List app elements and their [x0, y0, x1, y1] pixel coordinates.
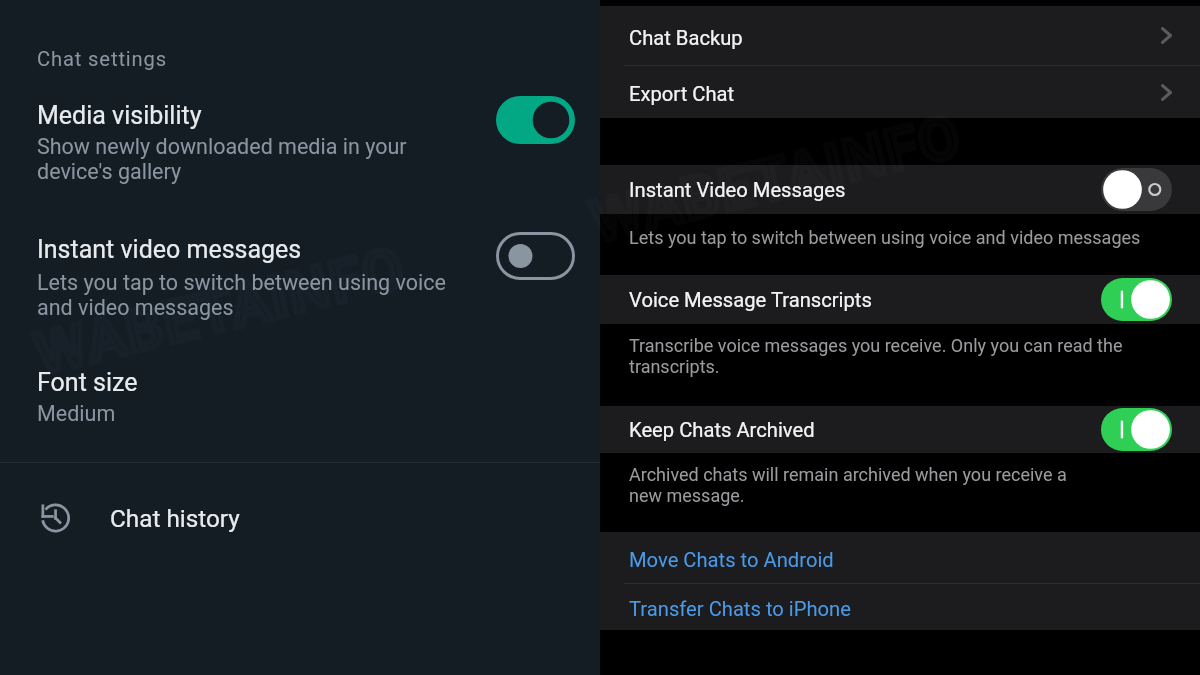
- staticText: Voice Message Transcripts: [629, 288, 872, 312]
- staticText: Instant video messages: [37, 235, 302, 264]
- button[interactable]: Switch off: [1101, 168, 1172, 211]
- staticText: Transfer Chats to iPhone: [629, 597, 851, 621]
- button[interactable]: Transfer Chats to iPhone: [600, 584, 1200, 630]
- button[interactable]: Keep Chats Archived: [600, 406, 1200, 453]
- staticText: Font size: [37, 368, 138, 397]
- staticText: Move Chats to Android: [629, 548, 834, 572]
- button[interactable]: Voice Message Transcripts: [600, 275, 1200, 324]
- button[interactable]: Chat Backup: [600, 6, 1200, 65]
- button[interactable]: Move Chats to Android: [600, 532, 1200, 583]
- button[interactable]: Instant video messages: [0, 226, 600, 336]
- staticText: Transcribe voice messages you receive. O…: [629, 335, 1189, 378]
- button[interactable]: Switch on: [1101, 408, 1172, 451]
- staticText: Keep Chats Archived: [629, 418, 815, 442]
- staticText: Chat settings: [37, 47, 168, 71]
- button[interactable]: Toggle on: [496, 96, 575, 144]
- staticText: WABETAINFO: [584, 101, 968, 256]
- button[interactable]: Export Chat: [600, 66, 1200, 118]
- button[interactable]: Font size: [0, 360, 600, 440]
- staticText: Show newly downloaded media in your devi…: [37, 134, 457, 184]
- staticText: Lets you tap to switch between using voi…: [629, 227, 1189, 248]
- button[interactable]: Media visibility: [0, 90, 600, 200]
- staticText: WABETAINFO: [28, 233, 412, 388]
- button[interactable]: Toggle off: [496, 232, 575, 280]
- staticText: Instant Video Messages: [629, 178, 846, 202]
- staticText: Export Chat: [629, 82, 735, 106]
- staticText: Chat Backup: [629, 26, 743, 50]
- staticText: Medium: [37, 401, 116, 426]
- staticText: Archived chats will remain archived when…: [629, 464, 1189, 507]
- staticText: Chat history: [110, 504, 240, 532]
- button[interactable]: Instant Video Messages: [600, 165, 1200, 214]
- button[interactable]: Switch on: [1101, 278, 1172, 321]
- staticText: Media visibility: [37, 101, 202, 130]
- other: Chat history: [41, 504, 69, 532]
- button[interactable]: Chat history: [0, 480, 600, 556]
- staticText: Lets you tap to switch between using voi…: [37, 270, 477, 320]
